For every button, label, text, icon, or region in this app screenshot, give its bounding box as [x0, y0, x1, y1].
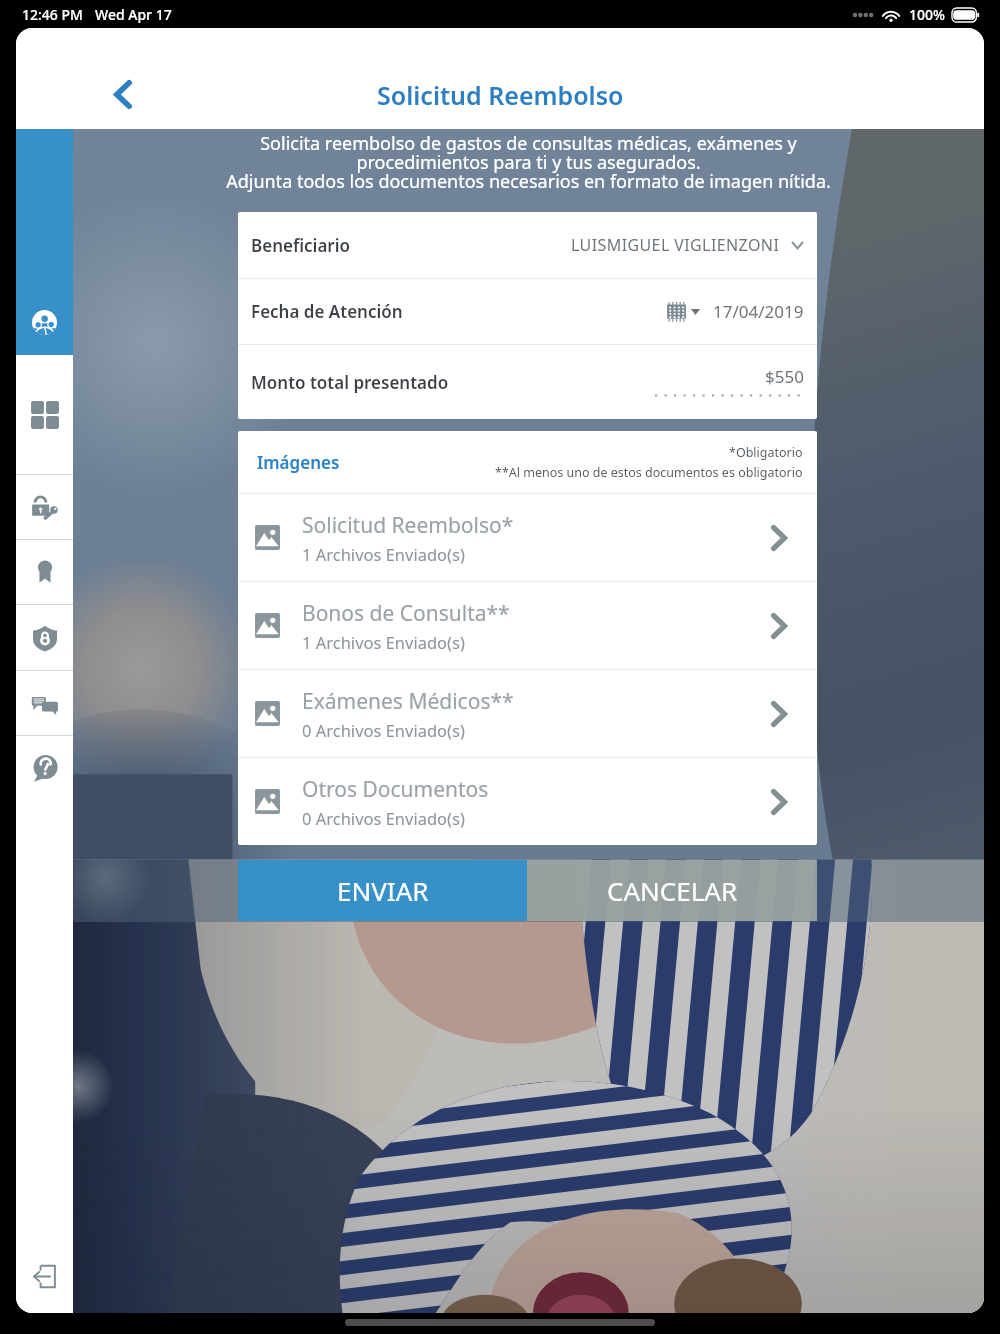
- staticText: ENVIAR: [337, 873, 429, 908]
- button[interactable]: CANCELAR: [527, 860, 817, 921]
- staticText: Beneficiario: [251, 234, 351, 257]
- staticText: *Obligatorio: [729, 444, 803, 461]
- staticText: 12:46 PM: [22, 5, 83, 24]
- staticText: Imágenes: [257, 451, 340, 474]
- button[interactable]: Mensajes: [16, 671, 73, 735]
- button[interactable]: Seguridad: [16, 605, 73, 670]
- button[interactable]: Beneficios: [16, 540, 73, 604]
- staticText: Solicitud Reembolso*: [302, 511, 514, 540]
- button[interactable]: Cerrar sesion: [16, 1239, 73, 1313]
- staticText: **Al menos uno de estos documentos es ob…: [495, 464, 803, 481]
- staticText: 100%: [909, 5, 945, 24]
- button[interactable]: Dashboard: [16, 355, 73, 474]
- button[interactable]: Back: [100, 71, 146, 117]
- button[interactable]: Solicitud Reembolso*: [238, 494, 817, 581]
- staticText: Monto total presentado: [251, 371, 449, 394]
- button[interactable]: Exámenes Médicos**: [238, 670, 817, 757]
- staticText: Solicitud Reembolso: [377, 78, 624, 112]
- staticText: CANCELAR: [607, 873, 738, 908]
- staticText: Otros Documentos: [302, 775, 489, 804]
- button[interactable]: Bonos de Consulta**: [238, 582, 817, 669]
- staticText: Fecha de Atención: [251, 300, 403, 323]
- staticText: Bonos de Consulta**: [302, 599, 510, 628]
- staticText: Exámenes Médicos**: [302, 687, 514, 716]
- button[interactable]: Claves: [16, 475, 73, 539]
- staticText: Wed Apr 17: [95, 5, 172, 24]
- staticText: 0 Archivos Enviado(s): [302, 719, 465, 741]
- staticText: Solicita reembolso de gastos de consulta…: [73, 131, 984, 193]
- staticText: 1 Archivos Enviado(s): [302, 543, 465, 565]
- button[interactable]: ENVIAR: [238, 860, 527, 921]
- button[interactable]: Ayuda: [16, 736, 73, 800]
- staticText: 17/04/2019: [713, 300, 804, 323]
- button[interactable]: Asegurados: [16, 129, 73, 355]
- staticText: 1 Archivos Enviado(s): [302, 631, 465, 653]
- button[interactable]: Otros Documentos: [238, 758, 817, 845]
- staticText: $550: [765, 365, 804, 388]
- staticText: LUISMIGUEL VIGLIENZONI: [571, 234, 780, 256]
- staticText: 0 Archivos Enviado(s): [302, 807, 465, 829]
